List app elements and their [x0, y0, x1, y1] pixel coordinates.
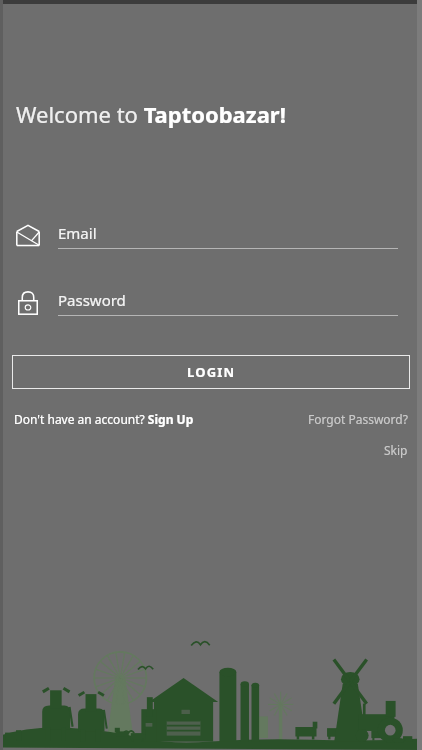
other: Password	[14, 289, 42, 317]
staticText: LOGIN	[187, 363, 236, 381]
other: Email	[14, 222, 42, 250]
button[interactable]: Email	[0, 216, 422, 256]
button[interactable]: Forgot Password?	[308, 411, 408, 427]
button[interactable]: Skip	[384, 442, 408, 458]
button[interactable]: Don't have an account? Sign Up	[14, 411, 194, 427]
staticText: Email	[58, 223, 97, 243]
button[interactable]: LOGIN	[12, 355, 410, 389]
staticText: Welcome to Taptoobazar!	[16, 99, 286, 129]
button[interactable]: Password	[0, 283, 422, 323]
staticText: Password	[58, 290, 126, 310]
